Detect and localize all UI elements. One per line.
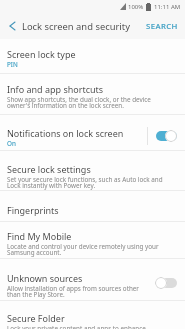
staticText: Show app shortcuts, the dual clock, or t… [7, 95, 151, 110]
staticText: Info and app shortcuts [7, 83, 104, 95]
button[interactable] [7, 19, 17, 33]
staticText: Secure lock settings [7, 163, 91, 175]
staticText: Find My Mobile [7, 230, 72, 242]
staticText: Notifications on lock screen [7, 127, 124, 139]
button[interactable] [155, 277, 177, 289]
button[interactable]: Find My Mobile [0, 222, 185, 259]
staticText: 11:11 AM [154, 3, 181, 11]
staticText: On [7, 139, 16, 148]
button[interactable] [155, 130, 177, 142]
staticText: Locate and control your device remotely … [7, 242, 159, 257]
staticText: PIN [7, 60, 18, 69]
staticText: Set your secure lock functions, such as … [7, 175, 163, 190]
button[interactable]: Secure lock settings [0, 151, 185, 191]
staticText: Screen lock type [7, 48, 76, 60]
staticText: Unknown sources [7, 272, 83, 284]
staticText: Lock screen and security [22, 20, 130, 33]
button[interactable]: Unknown sources [0, 259, 185, 301]
button[interactable]: Secure Folder [0, 301, 185, 329]
button[interactable]: SEARCH [146, 21, 178, 32]
staticText: Secure Folder [7, 312, 65, 324]
button[interactable]: Notifications on lock screen [0, 115, 185, 151]
staticText: Allow installation of apps from sources … [7, 284, 139, 299]
staticText: 100% [128, 3, 144, 11]
button[interactable]: Screen lock type [0, 39, 185, 74]
button[interactable]: Fingerprints [0, 191, 185, 222]
staticText: SEARCH [146, 21, 178, 32]
staticText: Lock your private content and apps to en… [7, 324, 146, 329]
staticText: Fingerprints [7, 204, 59, 216]
button[interactable]: Info and app shortcuts [0, 74, 185, 115]
